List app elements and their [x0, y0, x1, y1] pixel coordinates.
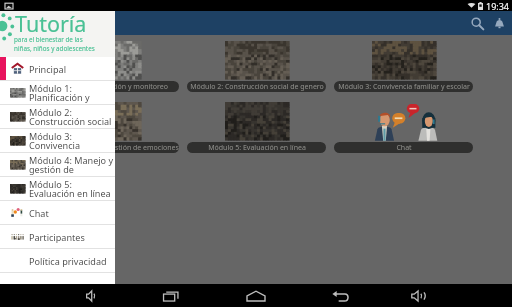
staticText: Chat: [396, 143, 412, 153]
staticText: Módulo 1: Planificación y: [29, 82, 90, 104]
button[interactable]: Chat: [0, 201, 115, 224]
staticText: Política privacidad: [29, 255, 107, 267]
button[interactable]: Back: [330, 285, 352, 307]
button[interactable]: Principal: [0, 57, 115, 80]
button[interactable]: Módulo 4: Manejo y gestión de emociones: [35, 102, 183, 153]
button[interactable]: Home: [245, 285, 267, 307]
button[interactable]: Volume down: [81, 285, 103, 307]
staticText: Módulo 2: Construcción social de genero: [190, 82, 324, 92]
button[interactable]: Módulo 1: Planificación y monitoreo: [35, 41, 183, 92]
staticText: Principal: [29, 63, 66, 75]
button[interactable]: Notifications: [488, 12, 510, 34]
button[interactable]: Módulo 2: Construcción social: [0, 105, 115, 128]
staticText: Tutoría: [15, 9, 87, 38]
staticText: Módulo 5: Evaluación en línea: [29, 178, 111, 200]
button[interactable]: Módulo 4: Manejo y gestión de: [0, 153, 115, 176]
button[interactable]: Volume up: [408, 285, 430, 307]
button[interactable]: Módulo 5: Evaluación en línea: [0, 177, 115, 200]
staticText: para el bienestar de las: [14, 35, 83, 44]
staticText: 19:34: [486, 0, 510, 11]
button[interactable]: Módulo 3: Convivencia: [0, 129, 115, 152]
staticText: Módulo 3: Convivencia familiar y escolar: [338, 82, 470, 92]
staticText: Módulo 2: Construcción social: [29, 106, 112, 128]
button[interactable]: Chat: [330, 102, 477, 153]
staticText: Chat: [29, 207, 49, 219]
button[interactable]: Participantes: [0, 225, 115, 248]
staticText: Módulo 5: Evaluación en línea: [208, 143, 306, 153]
button[interactable]: Módulo 5: Evaluación en línea: [183, 102, 330, 153]
button[interactable]: Política privacidad: [0, 249, 115, 272]
button[interactable]: Recent apps: [161, 285, 183, 307]
button[interactable]: Módulo 2: Construcción social de genero: [183, 41, 330, 92]
staticText: Módulo 4: Manejo y gestión de emociones: [40, 143, 179, 153]
staticText: Módulo 4: Manejo y gestión de: [29, 154, 114, 176]
staticText: Módulo 3: Convivencia: [29, 130, 81, 152]
button[interactable]: Módulo 3: Convivencia familiar y escolar: [330, 41, 477, 92]
staticText: Participantes: [29, 231, 85, 243]
button[interactable]: Módulo 1: Planificación y: [0, 81, 115, 104]
staticText: niñas, niños y adolescentes: [14, 44, 95, 53]
button[interactable]: Search: [466, 12, 488, 34]
staticText: Módulo 1: Planificación y monitoreo: [50, 82, 168, 92]
